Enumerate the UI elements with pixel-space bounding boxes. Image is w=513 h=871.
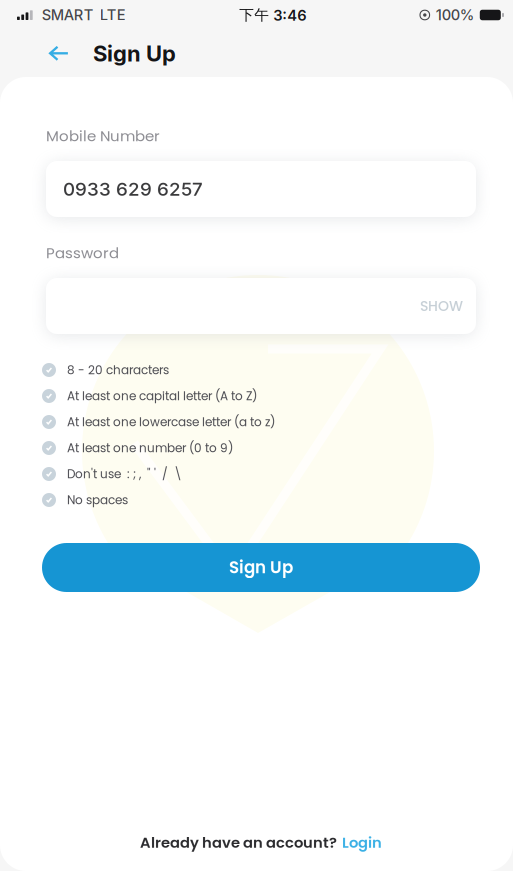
- staticText: At least one capital letter (A to Z): [67, 388, 257, 404]
- staticText: 100%: [436, 6, 475, 24]
- staticText: At least one number (0 to 9): [67, 440, 233, 456]
- staticText: SHOW: [420, 296, 463, 316]
- staticText: Sign Up: [93, 40, 176, 67]
- staticText: SMART: [42, 6, 94, 24]
- staticText: LTE: [100, 6, 126, 24]
- staticText: No spaces: [67, 492, 128, 508]
- staticText: Don't use : ; , " ' / \: [67, 466, 182, 482]
- staticText: 0933 629 6257: [63, 178, 203, 200]
- staticText: 下午 3:46: [239, 6, 306, 24]
- staticText: 8 - 20 characters: [67, 362, 169, 378]
- staticText: Password: [46, 242, 119, 263]
- button[interactable]: Sign Up: [42, 543, 480, 592]
- staticText: Mobile Number: [46, 125, 160, 146]
- staticText: Already have an account?: [140, 832, 337, 853]
- button[interactable]: SHOW: [420, 296, 463, 316]
- button[interactable]: Login: [342, 832, 382, 853]
- staticText: Login: [342, 832, 382, 853]
- button[interactable]: Back: [48, 34, 70, 72]
- staticText: Sign Up: [229, 556, 293, 579]
- staticText: At least one lowercase letter (a to z): [67, 414, 275, 430]
